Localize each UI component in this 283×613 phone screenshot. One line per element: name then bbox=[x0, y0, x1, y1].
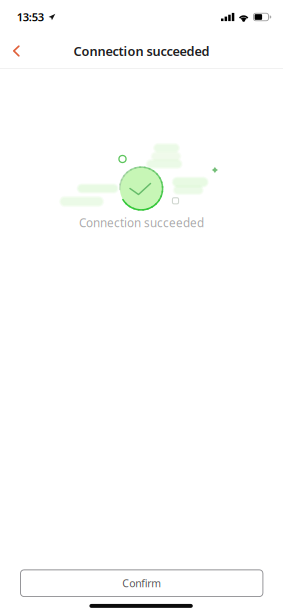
staticText: Confirm bbox=[122, 576, 161, 590]
staticText: Connection succeeded bbox=[73, 42, 209, 59]
button[interactable]: Confirm bbox=[20, 569, 263, 597]
button[interactable]: Back bbox=[0, 34, 30, 68]
staticText: Connection succeeded bbox=[79, 215, 204, 231]
staticText: 13:53 bbox=[17, 10, 44, 24]
